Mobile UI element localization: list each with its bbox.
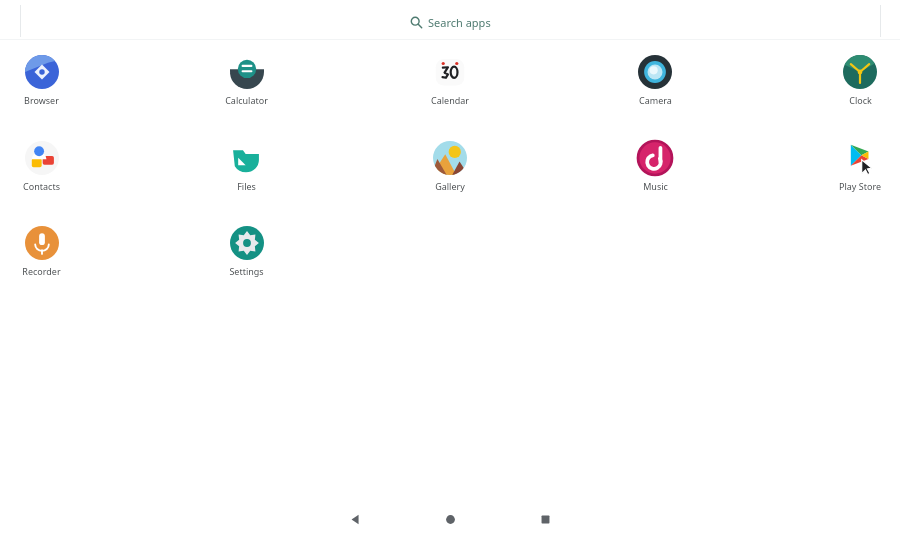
button[interactable]: Home (430, 499, 470, 539)
button[interactable]: Contacts (0, 141, 89, 195)
button[interactable]: Camera (607, 55, 703, 109)
staticText: Clock (849, 94, 872, 106)
staticText: Contacts (23, 180, 60, 192)
staticText: Browser (24, 94, 59, 106)
button[interactable]: Recorder (0, 226, 89, 280)
button[interactable]: Calendar (402, 55, 498, 109)
button[interactable]: Clock (812, 55, 900, 109)
button[interactable]: Browser (0, 55, 89, 109)
staticText: Music (643, 180, 668, 192)
button[interactable]: Music (607, 141, 703, 195)
staticText: Settings (229, 265, 264, 277)
button[interactable]: Back (335, 499, 375, 539)
staticText: Files (237, 180, 256, 192)
staticText: Calculator (225, 94, 268, 106)
staticText: Search apps (428, 15, 491, 30)
staticText: Recorder (22, 265, 61, 277)
staticText: Camera (639, 94, 672, 106)
staticText: Play Store (839, 180, 881, 192)
button[interactable]: Settings (198, 226, 294, 280)
button[interactable]: Gallery (402, 141, 498, 195)
button[interactable]: Files (198, 141, 294, 195)
button[interactable]: Search apps (0, 0, 900, 44)
staticText: Gallery (435, 180, 465, 192)
staticText: Calendar (431, 94, 469, 106)
button[interactable]: Recents (525, 499, 565, 539)
button[interactable]: Play Store (812, 141, 900, 195)
button[interactable]: Calculator (198, 55, 294, 109)
